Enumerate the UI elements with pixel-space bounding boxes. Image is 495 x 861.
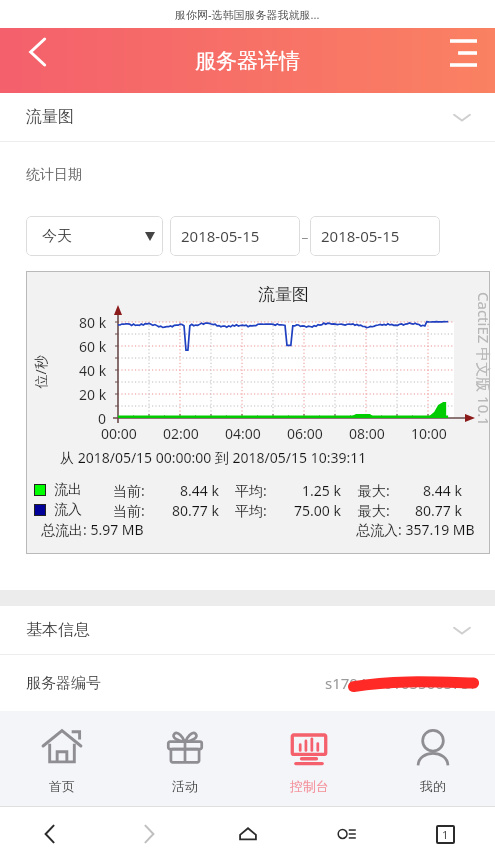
staticText: 8.44 k — [423, 481, 462, 500]
staticText: 10:00 — [411, 424, 447, 443]
staticText: 控制台 — [290, 778, 329, 794]
staticText: 平均: — [235, 501, 267, 520]
button[interactable]: Menu — [297, 807, 396, 861]
staticText: 20 k — [79, 385, 107, 404]
staticText: 当前: — [113, 481, 145, 500]
staticText: _ — [302, 223, 308, 241]
staticText: 00:00 — [101, 424, 137, 443]
staticText: 服务器编号 — [26, 674, 101, 693]
staticText: 04:00 — [225, 424, 261, 443]
staticText: 总流入: 357.19 MB — [356, 520, 475, 539]
staticText: 从 2018/05/15 00:00:00 到 2018/05/15 10:39… — [60, 448, 367, 467]
staticText: 总流出: 5.97 MB — [41, 520, 144, 539]
staticText: 8.44 k — [180, 481, 219, 500]
button[interactable]: Tabs — [396, 807, 495, 861]
button[interactable]: 2018-05-15 — [170, 216, 300, 256]
staticText: 我的 — [420, 778, 446, 794]
staticText: 统计日期 — [26, 166, 82, 184]
staticText: 2018-05-15 — [321, 226, 400, 246]
staticText: 02:00 — [163, 424, 199, 443]
button[interactable]: 活动 — [123, 711, 247, 806]
button[interactable]: 返回 — [0, 28, 64, 93]
staticText: 80 k — [79, 313, 107, 332]
staticText: 0 — [98, 409, 107, 428]
button[interactable]: 我的 — [371, 711, 495, 806]
staticText: 服务器详情 — [195, 48, 300, 74]
button[interactable]: 2018-05-15 — [310, 216, 440, 256]
staticText: 06:00 — [287, 424, 323, 443]
button[interactable]: 控制台 — [247, 711, 371, 806]
button[interactable]: Back — [0, 807, 99, 861]
staticText: 平均: — [235, 481, 267, 500]
staticText: 最大: — [358, 501, 390, 520]
staticText: 流量图 — [258, 284, 309, 305]
staticText: 流入 — [54, 501, 82, 519]
staticText: 服你网-选韩国服务器我就服... — [175, 7, 320, 22]
button[interactable]: Home — [198, 807, 297, 861]
staticText: 80.77 k — [415, 501, 462, 520]
staticText: 位/秒 — [30, 354, 49, 388]
button[interactable]: 今天 — [26, 216, 163, 256]
staticText: s17041101655605757 — [325, 673, 479, 693]
staticText: 流出 — [54, 481, 82, 499]
staticText: 60 k — [79, 337, 107, 356]
staticText: 80.77 k — [172, 501, 219, 520]
button[interactable]: 首页 — [0, 711, 123, 806]
staticText: 当前: — [113, 501, 145, 520]
staticText: CactiEZ 中文版 10.1 — [474, 292, 494, 426]
staticText: 2018-05-15 — [181, 226, 260, 246]
button[interactable]: 菜单 — [431, 28, 495, 93]
staticText: 基本信息 — [26, 620, 90, 640]
staticText: 1.25 k — [302, 481, 341, 500]
staticText: 75.00 k — [294, 501, 341, 520]
staticText: 首页 — [49, 778, 75, 794]
button[interactable]: Forward — [99, 807, 198, 861]
button[interactable]: 基本信息 — [0, 606, 495, 654]
button[interactable]: 服务器编号 — [0, 655, 495, 711]
staticText: 08:00 — [349, 424, 385, 443]
button[interactable]: 流量图 — [0, 93, 495, 141]
staticText: 1 — [442, 827, 449, 842]
staticText: 活动 — [172, 778, 198, 794]
staticText: 流量图 — [26, 107, 74, 127]
staticText: 今天 — [42, 227, 72, 246]
staticText: 最大: — [358, 481, 390, 500]
staticText: 40 k — [79, 361, 107, 380]
